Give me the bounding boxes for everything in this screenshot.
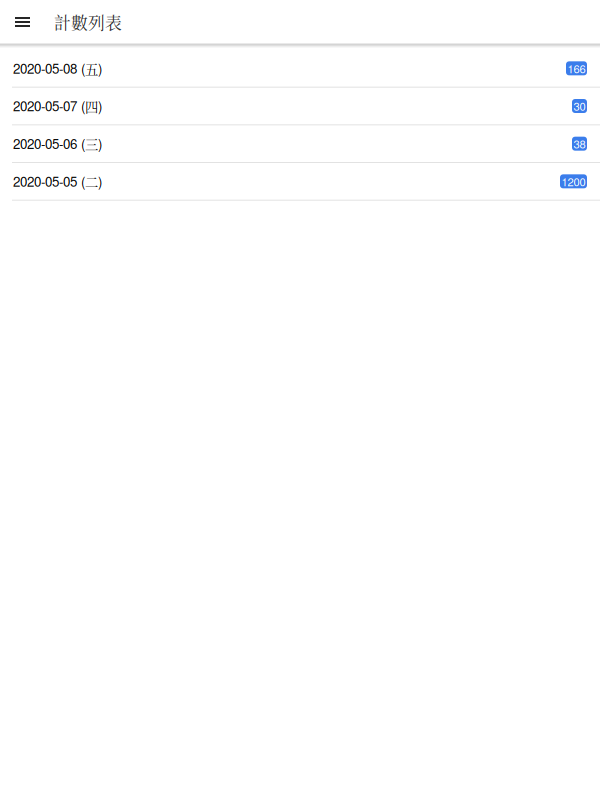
staticText: 1200 [561, 173, 585, 189]
button[interactable]: 2020-05-06 (三) [0, 125, 600, 163]
staticText: 2020-05-05 (二) [13, 171, 102, 191]
staticText: 2020-05-07 (四) [13, 96, 102, 116]
staticText: 30 [573, 98, 585, 114]
staticText: 38 [573, 136, 585, 152]
button[interactable]: 2020-05-08 (五) [0, 50, 600, 88]
staticText: 166 [567, 60, 585, 76]
staticText: 2020-05-06 (三) [13, 134, 102, 154]
button[interactable]: 2020-05-07 (四) [0, 88, 600, 125]
button[interactable]: 2020-05-05 (二) [0, 163, 600, 201]
button[interactable]: Menu [0, 0, 45, 44]
staticText: 2020-05-08 (五) [13, 58, 102, 78]
staticText: 計數列表 [54, 10, 122, 34]
